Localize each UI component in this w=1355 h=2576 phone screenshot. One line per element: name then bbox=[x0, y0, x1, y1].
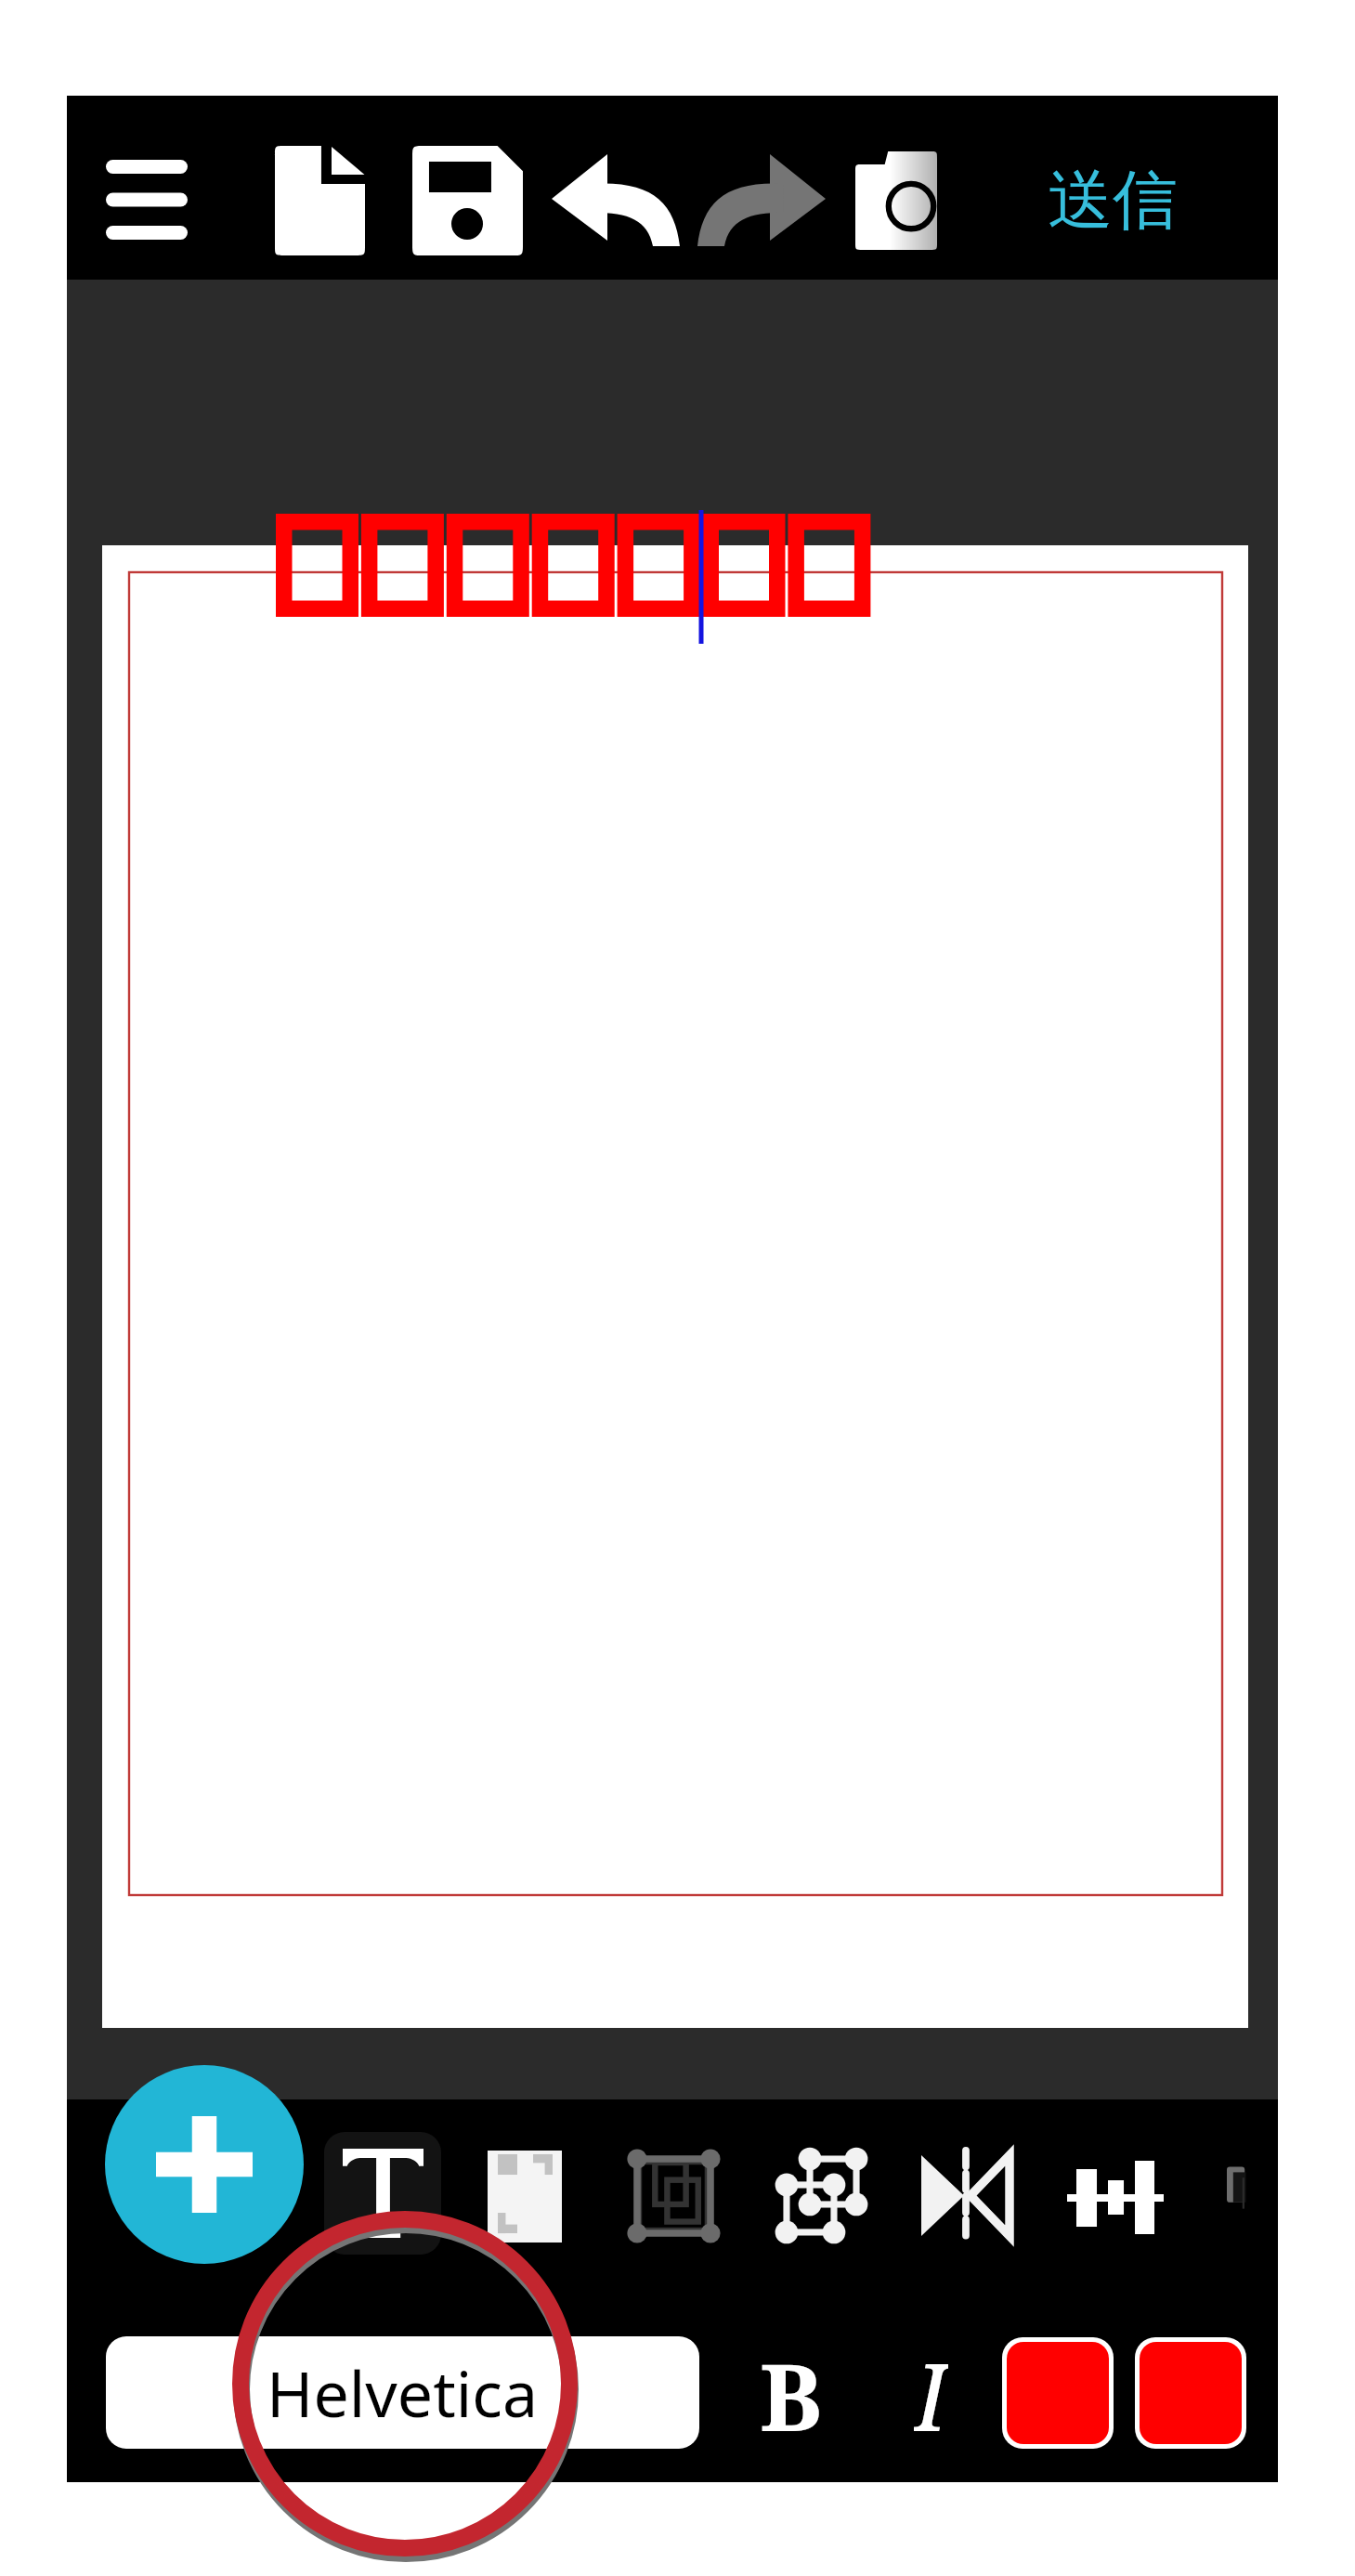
staticText: B bbox=[760, 2332, 823, 2452]
staticText: 送信 bbox=[1048, 160, 1178, 242]
staticText: I bbox=[914, 2332, 948, 2452]
button[interactable]: Color bbox=[1002, 2337, 1114, 2449]
button[interactable]: I bbox=[873, 2332, 988, 2452]
button[interactable]: B bbox=[734, 2332, 849, 2452]
button[interactable]: Group bbox=[613, 2134, 735, 2257]
button[interactable]: Flip horizontal bbox=[908, 2143, 1023, 2248]
button[interactable]: Image bbox=[476, 2137, 573, 2256]
button[interactable]: Align center bbox=[1052, 2150, 1178, 2245]
button[interactable]: 送信 bbox=[1020, 128, 1205, 272]
button[interactable]: Color bbox=[1135, 2337, 1246, 2449]
button[interactable]: Add bbox=[105, 2065, 304, 2264]
button[interactable]: Ungroup bbox=[762, 2133, 882, 2257]
button[interactable]: More tools bbox=[1212, 2131, 1278, 2249]
staticText: Helvetica bbox=[267, 2349, 539, 2436]
button[interactable]: Menu bbox=[94, 148, 200, 252]
button[interactable]: Helvetica bbox=[106, 2336, 699, 2449]
button[interactable]: Save bbox=[396, 129, 540, 271]
button[interactable]: Camera bbox=[843, 137, 949, 265]
button[interactable]: Undo bbox=[543, 140, 687, 260]
button[interactable]: New document bbox=[261, 129, 378, 271]
button[interactable]: Text bbox=[324, 2132, 441, 2255]
button[interactable]: Redo bbox=[689, 140, 833, 260]
